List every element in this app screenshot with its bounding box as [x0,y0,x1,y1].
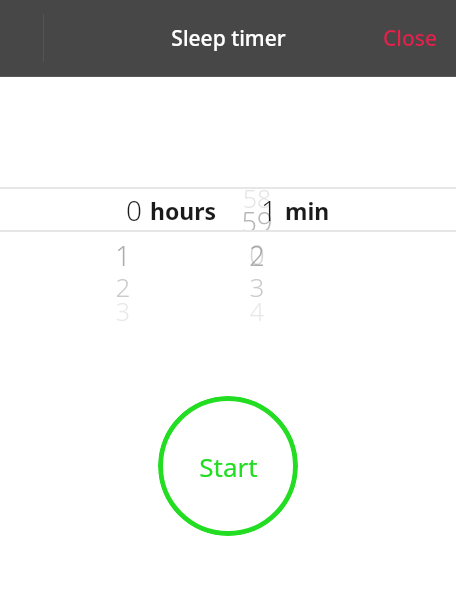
staticText: Sleep timer [171,24,286,53]
button[interactable]: Start [158,396,298,536]
staticText: 2 [228,237,286,274]
staticText: 2 [94,269,152,304]
staticText: Start [199,449,258,484]
staticText: 58 [228,181,286,215]
staticText: 3 [94,294,152,328]
staticText: hours [150,195,217,226]
staticText: 1 [94,237,152,274]
staticText: 1 [261,191,277,229]
staticText: 0 [126,191,142,229]
staticText: 0 [228,236,286,273]
staticText: Close [383,24,438,53]
staticText: 59 [228,203,286,240]
staticText: 3 [228,269,286,304]
staticText: min [285,195,330,226]
staticText: 4 [228,294,286,328]
button[interactable]: 0 [0,187,456,232]
button[interactable]: Close [365,12,456,65]
